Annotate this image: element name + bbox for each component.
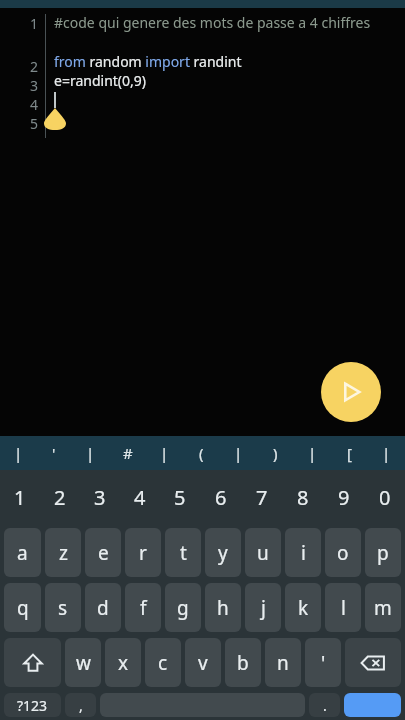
button[interactable]: s [45, 583, 81, 632]
staticText: 4 [30, 95, 39, 114]
staticText: q [17, 595, 29, 621]
staticText: z [59, 540, 68, 566]
button[interactable]: n [265, 638, 301, 687]
button[interactable]: 6 [200, 470, 241, 525]
button[interactable]: q [4, 583, 41, 632]
button[interactable]: p [365, 528, 401, 577]
button[interactable]: Symbols [4, 693, 61, 717]
staticText: c [158, 650, 168, 676]
staticText: e [98, 540, 109, 566]
staticText: j [261, 595, 266, 621]
staticText: r [139, 540, 147, 566]
staticText: 7 [256, 484, 268, 511]
staticText: k [298, 595, 309, 621]
button[interactable]: k [285, 583, 321, 632]
staticText: 9 [338, 484, 350, 511]
button[interactable]: m [365, 583, 401, 632]
button[interactable]: z [45, 528, 81, 577]
button[interactable]: ( [183, 436, 220, 470]
staticText: | [86, 443, 95, 463]
button[interactable]: i [285, 528, 321, 577]
button[interactable]: r [125, 528, 161, 577]
button[interactable]: g [165, 583, 201, 632]
staticText: d [97, 595, 109, 621]
staticText: | [14, 443, 23, 463]
button[interactable]: ' [305, 638, 341, 687]
button[interactable]: 2 [40, 470, 80, 525]
button[interactable]: | [72, 436, 109, 470]
staticText: 1 [30, 14, 39, 33]
button[interactable]: [ [331, 436, 368, 470]
staticText: . [323, 696, 327, 715]
staticText: # [123, 443, 133, 463]
staticText: g [177, 595, 189, 621]
button[interactable]: v [185, 638, 221, 687]
button[interactable]: y [205, 528, 241, 577]
button[interactable]: j [245, 583, 281, 632]
button[interactable]: | [368, 436, 405, 470]
staticText: n [277, 650, 289, 676]
staticText: p [377, 540, 389, 566]
button[interactable]: b [225, 638, 261, 687]
button[interactable]: 3 [80, 470, 120, 525]
button[interactable]: Comma [65, 693, 96, 717]
button[interactable]: a [4, 528, 41, 577]
staticText: x [118, 650, 129, 676]
button[interactable]: 8 [282, 470, 323, 525]
button[interactable]: Run [321, 362, 381, 422]
staticText: ' [52, 443, 56, 463]
staticText: h [217, 595, 229, 621]
button[interactable]: x [105, 638, 141, 687]
button[interactable]: ) [257, 436, 294, 470]
button[interactable]: w [65, 638, 101, 687]
button[interactable]: | [220, 436, 257, 470]
button[interactable]: ' [36, 436, 72, 470]
staticText: ' [321, 650, 326, 676]
staticText: i [301, 540, 306, 566]
button[interactable]: f [125, 583, 161, 632]
staticText: 8 [297, 484, 309, 511]
button[interactable]: Period [309, 693, 340, 717]
button[interactable]: 4 [120, 470, 160, 525]
staticText: b [237, 650, 249, 676]
staticText: u [257, 540, 269, 566]
staticText: ) [273, 443, 278, 463]
button[interactable]: | [146, 436, 183, 470]
staticText: 3 [30, 76, 39, 95]
button[interactable]: t [165, 528, 201, 577]
staticText: 2 [30, 57, 39, 76]
button[interactable]: 5 [160, 470, 200, 525]
staticText: y [218, 540, 228, 566]
button[interactable]: c [145, 638, 181, 687]
staticText: 5 [174, 484, 186, 511]
button[interactable]: e [85, 528, 121, 577]
staticText: [ [347, 443, 352, 463]
staticText: | [308, 443, 317, 463]
button[interactable]: u [245, 528, 281, 577]
staticText: ( [199, 443, 204, 463]
staticText: | [234, 443, 243, 463]
staticText: 0 [379, 484, 391, 511]
staticText: 4 [134, 484, 146, 511]
button[interactable]: o [325, 528, 361, 577]
button[interactable]: Backspace [345, 638, 401, 687]
button[interactable]: l [325, 583, 361, 632]
button[interactable]: # [109, 436, 146, 470]
staticText: | [382, 443, 391, 463]
staticText: , [79, 696, 83, 715]
button[interactable]: Shift [4, 638, 61, 687]
button[interactable]: d [85, 583, 121, 632]
staticText: l [341, 595, 346, 621]
button[interactable]: | [294, 436, 331, 470]
staticText: w [76, 650, 91, 676]
button[interactable]: Enter [344, 693, 401, 717]
button[interactable]: 9 [323, 470, 364, 525]
button[interactable]: 0 [364, 470, 405, 525]
staticText: e=randint(0,9) [54, 71, 147, 90]
button[interactable]: 1 [0, 470, 40, 525]
button[interactable]: | [0, 436, 36, 470]
staticText: v [198, 650, 208, 676]
button[interactable]: 7 [241, 470, 282, 525]
button[interactable]: h [205, 583, 241, 632]
